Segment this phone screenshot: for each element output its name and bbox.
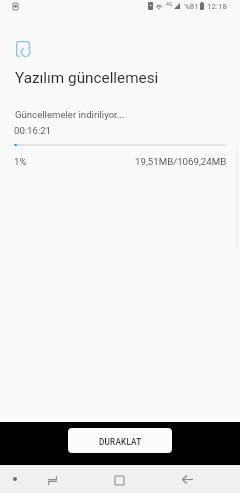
button[interactable]: Recent apps [60,465,120,493]
button[interactable]: Back [180,465,240,493]
button[interactable]: DURAKLAT [68,428,172,453]
button[interactable]: Home [120,465,180,493]
staticText: DURAKLAT [99,437,142,447]
staticText: %81 [184,2,199,11]
button[interactable]: Menu [0,465,60,493]
staticText: Güncellemeler indiriliyor... [15,109,125,120]
staticText: 19,51MB/1069,24MB [135,156,227,167]
staticText: 00:16:21 [14,125,51,136]
staticText: 1% [14,156,27,167]
staticText: 12:18 [207,2,227,11]
staticText: 4G [166,1,173,7]
staticText: Yazılım güncellemesi [15,69,159,87]
